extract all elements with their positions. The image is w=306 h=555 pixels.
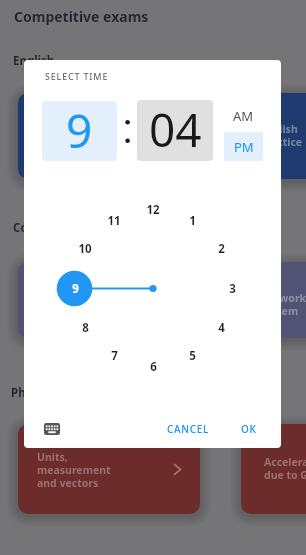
button[interactable]: 12 bbox=[139, 199, 167, 221]
staticText: 3 bbox=[229, 281, 236, 297]
button[interactable]: 10 bbox=[71, 238, 99, 260]
button[interactable]: CANCEL bbox=[160, 415, 216, 443]
staticText: Physics bbox=[11, 385, 54, 401]
staticText: PM bbox=[234, 138, 254, 156]
staticText: English Grammar bbox=[37, 122, 87, 149]
button[interactable]: English Grammar bbox=[18, 93, 200, 179]
button[interactable]: OK bbox=[232, 415, 266, 443]
staticText: English bbox=[13, 53, 55, 69]
staticText: Computer bbox=[13, 220, 71, 236]
staticText: 2 bbox=[218, 241, 225, 257]
staticText: English Practice bbox=[260, 122, 303, 149]
button[interactable]: English Practice bbox=[241, 93, 306, 179]
button[interactable]: 04 bbox=[137, 100, 213, 161]
staticText: 1 bbox=[189, 213, 196, 229]
button[interactable]: Computer Basics bbox=[18, 262, 200, 338]
button[interactable]: 3 bbox=[218, 278, 246, 300]
button[interactable]: 1 bbox=[178, 210, 206, 232]
button[interactable]: Switch to text input bbox=[37, 415, 67, 443]
staticText: Acceleration due to Gravity bbox=[264, 455, 306, 482]
staticText: 04 bbox=[149, 100, 202, 159]
staticText: 4 bbox=[218, 320, 225, 336]
staticText: SELECT TIME bbox=[45, 70, 109, 82]
staticText: AM bbox=[233, 107, 254, 125]
staticText: 6 bbox=[150, 359, 157, 375]
button[interactable]: 4 bbox=[207, 317, 235, 339]
staticText: Network Operating System bbox=[260, 291, 306, 318]
button[interactable]: 7 bbox=[100, 345, 128, 367]
staticText: 8 bbox=[82, 320, 89, 336]
staticText: 12 bbox=[146, 202, 160, 218]
button[interactable]: 8 bbox=[71, 317, 99, 339]
staticText: 9 bbox=[72, 281, 79, 297]
staticText: Competitive exams bbox=[14, 7, 149, 26]
staticText: 9 bbox=[66, 101, 93, 159]
button[interactable]: Acceleration due to Gravity bbox=[241, 424, 306, 514]
button[interactable]: PM bbox=[224, 132, 263, 161]
staticText: Computer Basics bbox=[37, 291, 90, 318]
button[interactable]: Units, measurement and vectors bbox=[18, 424, 200, 514]
button[interactable]: Network Operating System bbox=[241, 262, 306, 338]
button[interactable]: 9 bbox=[61, 278, 89, 300]
button[interactable]: AM bbox=[224, 101, 263, 131]
button[interactable]: 6 bbox=[139, 356, 167, 378]
staticText: OK bbox=[241, 422, 257, 436]
button[interactable]: 5 bbox=[178, 345, 206, 367]
button[interactable]: 9 bbox=[42, 101, 117, 161]
staticText: 11 bbox=[107, 213, 121, 229]
staticText: 5 bbox=[189, 348, 196, 364]
button[interactable]: 2 bbox=[207, 238, 235, 260]
staticText: 7 bbox=[111, 348, 118, 364]
staticText: Units, measurement and vectors bbox=[37, 450, 111, 490]
staticText: CANCEL bbox=[167, 422, 210, 436]
button[interactable]: 11 bbox=[100, 210, 128, 232]
staticText: 10 bbox=[78, 241, 92, 257]
